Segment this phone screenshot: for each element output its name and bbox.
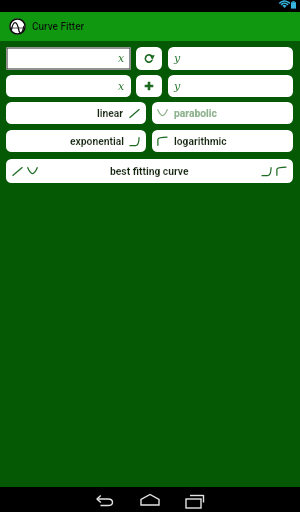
button[interactable]: logarithmic <box>152 130 293 152</box>
button[interactable]: x <box>6 47 131 70</box>
staticText: linear <box>97 107 124 119</box>
staticText: Curve Fitter <box>32 21 85 33</box>
button[interactable]: y <box>168 75 293 97</box>
button[interactable]: Add <box>136 75 162 97</box>
staticText: y <box>174 52 181 65</box>
button[interactable]: Reset <box>136 47 162 70</box>
button[interactable]: y <box>168 47 293 70</box>
staticText: logarithmic <box>174 135 227 147</box>
button[interactable]: x <box>6 75 131 97</box>
staticText: y <box>174 80 181 93</box>
button[interactable]: best fitting curve <box>6 159 293 183</box>
staticText: x <box>118 80 125 93</box>
staticText: x <box>118 52 125 65</box>
staticText: exponential <box>70 135 124 147</box>
staticText: best fitting curve <box>110 165 189 177</box>
staticText: parabolic <box>174 107 217 119</box>
button[interactable]: exponential <box>6 130 146 152</box>
button[interactable]: parabolic <box>152 102 293 124</box>
button[interactable]: linear <box>6 102 146 124</box>
